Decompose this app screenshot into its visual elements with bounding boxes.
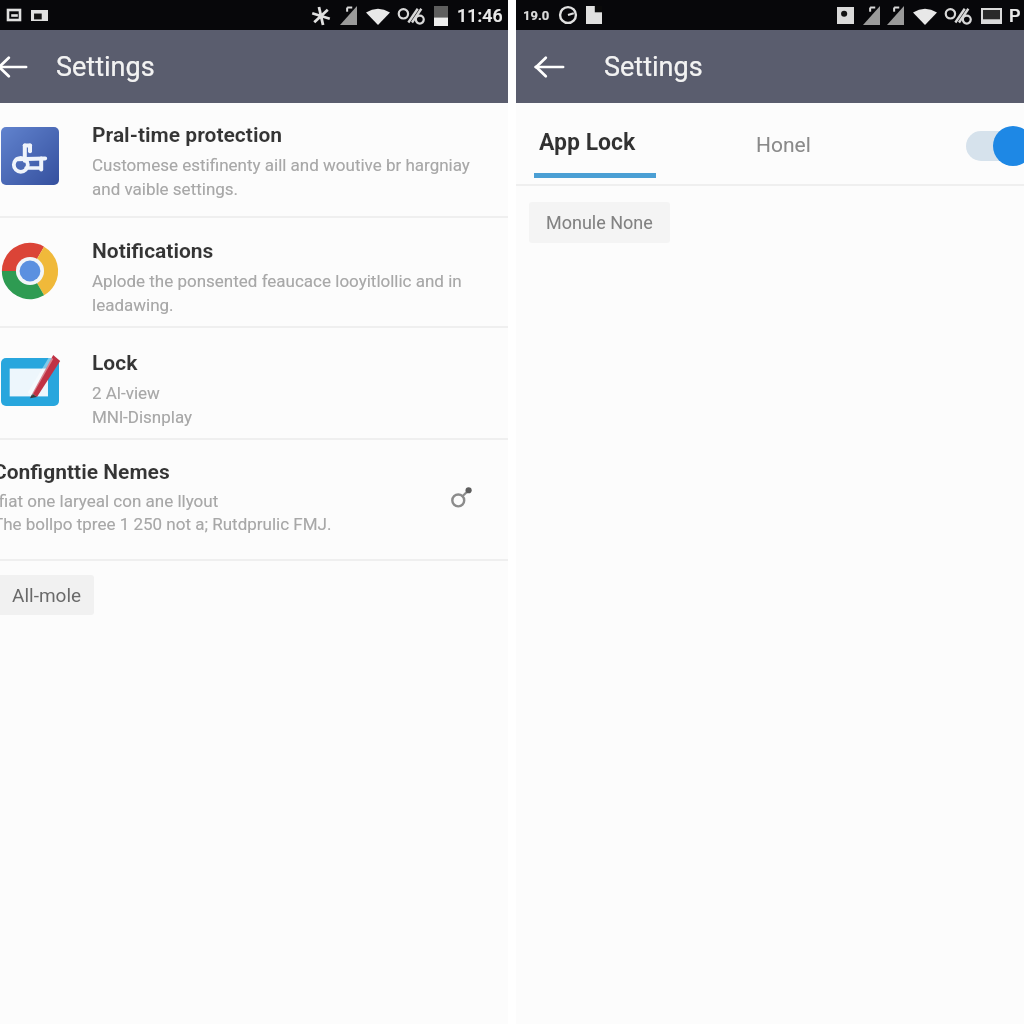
- button[interactable]: Toggle: [966, 126, 1024, 176]
- staticText: Notifications: [92, 239, 214, 264]
- button[interactable]: All-mole: [0, 575, 94, 615]
- button[interactable]: Back: [526, 44, 572, 90]
- staticText: 11:46: [457, 5, 503, 26]
- staticText: App Lock: [539, 129, 636, 156]
- button[interactable]: Notifications: [0, 226, 508, 325]
- button[interactable]: Pral-time protection: [0, 110, 508, 215]
- staticText: Pral-time protection: [92, 123, 283, 148]
- button[interactable]: Configure: [444, 478, 480, 514]
- staticText: Monule None: [546, 212, 653, 233]
- staticText: Lock: [92, 351, 138, 376]
- staticText: P: [1009, 5, 1021, 26]
- staticText: Settings: [56, 51, 155, 83]
- staticText: Honel: [756, 133, 811, 158]
- button[interactable]: App Lock: [520, 105, 670, 184]
- staticText: 19.0: [523, 8, 550, 23]
- staticText: Settings: [604, 51, 703, 83]
- staticText: Customese estifinenty aill and woutive b…: [92, 155, 470, 199]
- staticText: Confignttie Nemes: [0, 460, 170, 485]
- button[interactable]: Monule None: [529, 202, 670, 243]
- button[interactable]: Honel: [726, 105, 848, 184]
- staticText: All-mole: [12, 584, 82, 606]
- staticText: rfiat one laryeal con ane llyout The bol…: [0, 491, 332, 534]
- staticText: 2 Al-view MNl-Disnplay: [92, 383, 193, 427]
- staticText: Aplode the ponsented feaucace looyitloll…: [92, 271, 462, 315]
- button[interactable]: Back: [0, 44, 35, 90]
- button[interactable]: Confignttie Nemes: [0, 441, 508, 559]
- button[interactable]: Lock: [0, 338, 508, 437]
